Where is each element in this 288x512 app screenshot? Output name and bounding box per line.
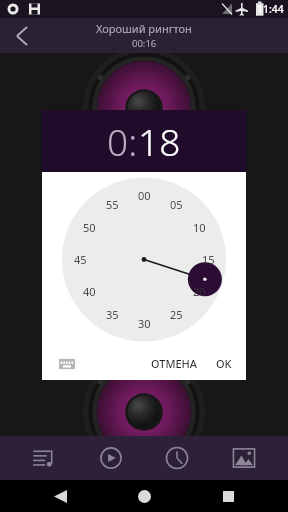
button[interactable]: Home [120, 480, 168, 512]
staticText: 18 [138, 116, 181, 166]
button[interactable]: ОТМЕНА [142, 350, 207, 377]
staticText: 00:16 [132, 37, 157, 50]
button[interactable]: Play [89, 436, 133, 480]
button[interactable]: Image [222, 436, 266, 480]
staticText: 15 [202, 252, 215, 267]
staticText: Хороший рингтон [96, 21, 192, 36]
staticText: 20 [193, 284, 206, 299]
staticText: 50 [83, 220, 96, 235]
staticText: 0: [107, 116, 138, 166]
button[interactable]: Timer [155, 436, 199, 480]
staticText: 25 [170, 307, 183, 322]
staticText: 10 [193, 220, 206, 235]
staticText: 55 [106, 197, 119, 212]
staticText: 00 [138, 188, 151, 203]
staticText: 45 [74, 252, 87, 267]
staticText: 30 [138, 316, 151, 331]
button[interactable]: Recents [204, 480, 252, 512]
staticText: 11:44 [257, 2, 284, 16]
staticText: 35 [106, 307, 119, 322]
button[interactable]: Back [36, 480, 84, 512]
staticText: 05 [170, 197, 183, 212]
staticText: OK [216, 356, 232, 371]
button[interactable]: Back [0, 18, 44, 53]
staticText: 40 [83, 284, 96, 299]
button[interactable]: Playlist [22, 436, 66, 480]
staticText: ОТМЕНА [151, 356, 198, 371]
button[interactable]: Keyboard input [52, 349, 82, 379]
button[interactable]: OK [207, 350, 246, 377]
